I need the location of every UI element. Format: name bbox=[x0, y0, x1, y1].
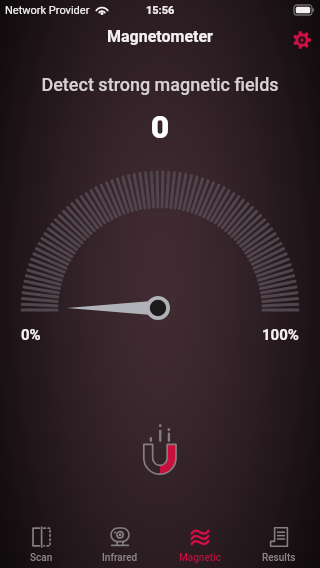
staticText: 0% bbox=[21, 326, 41, 344]
button[interactable]: Scan bbox=[2, 506, 80, 568]
staticText: Results bbox=[262, 552, 296, 564]
button[interactable]: Magnetic bbox=[161, 506, 239, 568]
button[interactable]: Infrared bbox=[81, 506, 159, 568]
button[interactable]: Settings bbox=[293, 31, 311, 49]
staticText: Network Provider bbox=[5, 4, 90, 17]
button[interactable]: Results bbox=[240, 506, 318, 568]
staticText: Infrared bbox=[102, 552, 138, 564]
staticText: Magnetic bbox=[179, 552, 221, 564]
staticText: Scan bbox=[30, 552, 53, 564]
staticText: Magnetometer bbox=[107, 27, 213, 46]
staticText: Detect strong magnetic fields bbox=[0, 74, 320, 95]
staticText: 100% bbox=[262, 326, 299, 344]
staticText: 0 bbox=[0, 108, 320, 146]
staticText: 15:56 bbox=[146, 4, 175, 17]
